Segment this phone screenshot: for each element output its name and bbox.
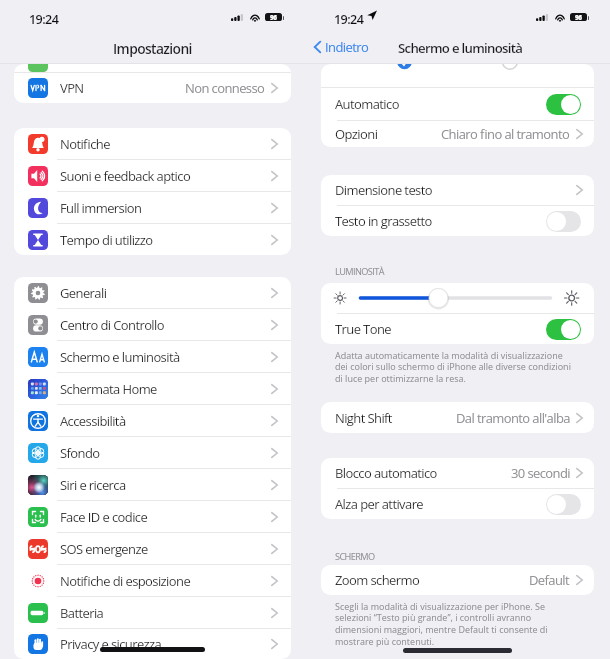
- staticText: True Tone: [335, 320, 391, 338]
- staticText: 19:24: [29, 11, 59, 28]
- button[interactable]: Face ID e codice: [14, 501, 291, 532]
- staticText: Impostazioni: [113, 39, 192, 58]
- staticText: VPN: [60, 79, 84, 97]
- staticText: Schermata Home: [60, 380, 157, 398]
- button[interactable]: Siri e ricerca: [14, 469, 291, 500]
- staticText: Centro di Controllo: [60, 316, 164, 334]
- button[interactable]: Zoom schermo: [321, 565, 594, 595]
- button[interactable]: Toggle on: [546, 319, 581, 340]
- button[interactable]: Tempo di utilizzo: [14, 224, 291, 255]
- staticText: Indietro: [325, 38, 369, 56]
- staticText: SOS emergenze: [60, 540, 148, 558]
- button[interactable]: Alza per attivare: [321, 489, 594, 519]
- staticText: Automatico: [335, 95, 399, 113]
- button[interactable]: Testo in grassetto: [321, 206, 594, 236]
- staticText: Scegli la modalità di visualizzazione pe…: [335, 600, 577, 648]
- button[interactable]: Automatico: [321, 88, 594, 120]
- button[interactable]: Centro di Controllo: [14, 309, 291, 340]
- staticText: LUMINOSITÀ: [335, 265, 384, 278]
- button[interactable]: Schermo e luminosità: [14, 341, 291, 372]
- button[interactable]: Notifiche: [14, 128, 291, 159]
- staticText: Suoni e feedback aptico: [60, 167, 191, 185]
- staticText: Blocco automatico: [335, 464, 437, 482]
- button[interactable]: Indietro: [314, 38, 369, 56]
- staticText: Alza per attivare: [335, 495, 424, 513]
- staticText: 30 secondi: [511, 464, 570, 482]
- staticText: Testo in grassetto: [335, 212, 432, 230]
- staticText: 96: [270, 13, 277, 21]
- button[interactable]: Opzioni: [321, 121, 594, 147]
- button[interactable]: Toggle on: [546, 94, 581, 115]
- staticText: Dal tramonto all'alba: [456, 409, 570, 427]
- button[interactable]: Accessibilità: [14, 405, 291, 436]
- button[interactable]: VPN: [14, 73, 291, 103]
- button[interactable]: Toggle off: [546, 494, 581, 515]
- staticText: Privacy e sicurezza: [60, 635, 162, 653]
- staticText: Tempo di utilizzo: [60, 231, 153, 249]
- staticText: Dimensione testo: [335, 181, 432, 199]
- button[interactable]: Generali: [14, 277, 291, 308]
- button[interactable]: Suoni e feedback aptico: [14, 160, 291, 191]
- staticText: Full immersion: [60, 199, 142, 217]
- button[interactable]: True Tone: [321, 314, 594, 344]
- staticText: Adatta automaticamente la modalità di vi…: [335, 349, 577, 385]
- button[interactable]: Batteria: [14, 597, 291, 628]
- staticText: Batteria: [60, 604, 104, 622]
- staticText: Siri e ricerca: [60, 476, 126, 494]
- staticText: Night Shift: [335, 409, 392, 427]
- button[interactable]: Sfondo: [14, 437, 291, 468]
- button[interactable]: Dimensione testo: [321, 175, 594, 205]
- staticText: 96: [575, 13, 582, 21]
- button[interactable]: Schermata Home: [14, 373, 291, 404]
- staticText: Schermo e luminosità: [398, 39, 523, 57]
- staticText: 19:24: [334, 11, 364, 28]
- button[interactable]: Full immersion: [14, 192, 291, 223]
- staticText: Default: [529, 571, 570, 589]
- staticText: Non connesso: [185, 79, 265, 97]
- button[interactable]: Privacy e sicurezza: [14, 629, 291, 659]
- staticText: Generali: [60, 284, 107, 302]
- staticText: Sfondo: [60, 444, 100, 462]
- staticText: Zoom schermo: [335, 571, 420, 589]
- button[interactable]: Night Shift: [321, 402, 594, 433]
- staticText: Chiaro fino al tramonto: [441, 125, 570, 143]
- button[interactable]: Toggle off: [546, 211, 581, 232]
- staticText: Notifiche di esposizione: [60, 572, 191, 590]
- button[interactable]: SOS emergenze: [14, 533, 291, 564]
- staticText: Opzioni: [335, 125, 378, 143]
- staticText: Notifiche: [60, 135, 110, 153]
- button[interactable]: Blocco automatico: [321, 458, 594, 488]
- button[interactable]: Notifiche di esposizione: [14, 565, 291, 596]
- staticText: SCHERMO: [335, 550, 375, 563]
- staticText: Schermo e luminosità: [60, 348, 180, 366]
- staticText: Face ID e codice: [60, 508, 148, 526]
- staticText: Accessibilità: [60, 412, 126, 430]
